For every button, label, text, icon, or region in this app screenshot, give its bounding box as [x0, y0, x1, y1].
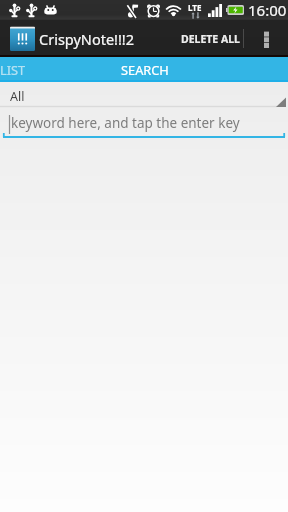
staticText: keyword here, and tap the enter key	[11, 114, 240, 132]
button[interactable]: More options	[244, 20, 288, 57]
button[interactable]: DELETE ALL	[171, 20, 243, 57]
button[interactable]: SEARCH	[105, 59, 185, 80]
staticText: 16:00	[248, 0, 287, 20]
button[interactable]: All	[0, 82, 288, 108]
staticText: LTE	[188, 2, 202, 13]
button[interactable]: LIST	[0, 59, 105, 80]
staticText: DELETE ALL	[181, 32, 240, 46]
staticText: All	[10, 88, 25, 105]
staticText: CrispyNote!!!2	[39, 29, 135, 49]
button[interactable]: keyword here, and tap the enter key	[0, 108, 288, 139]
staticText: LIST	[0, 61, 26, 78]
staticText: SEARCH	[121, 61, 169, 78]
